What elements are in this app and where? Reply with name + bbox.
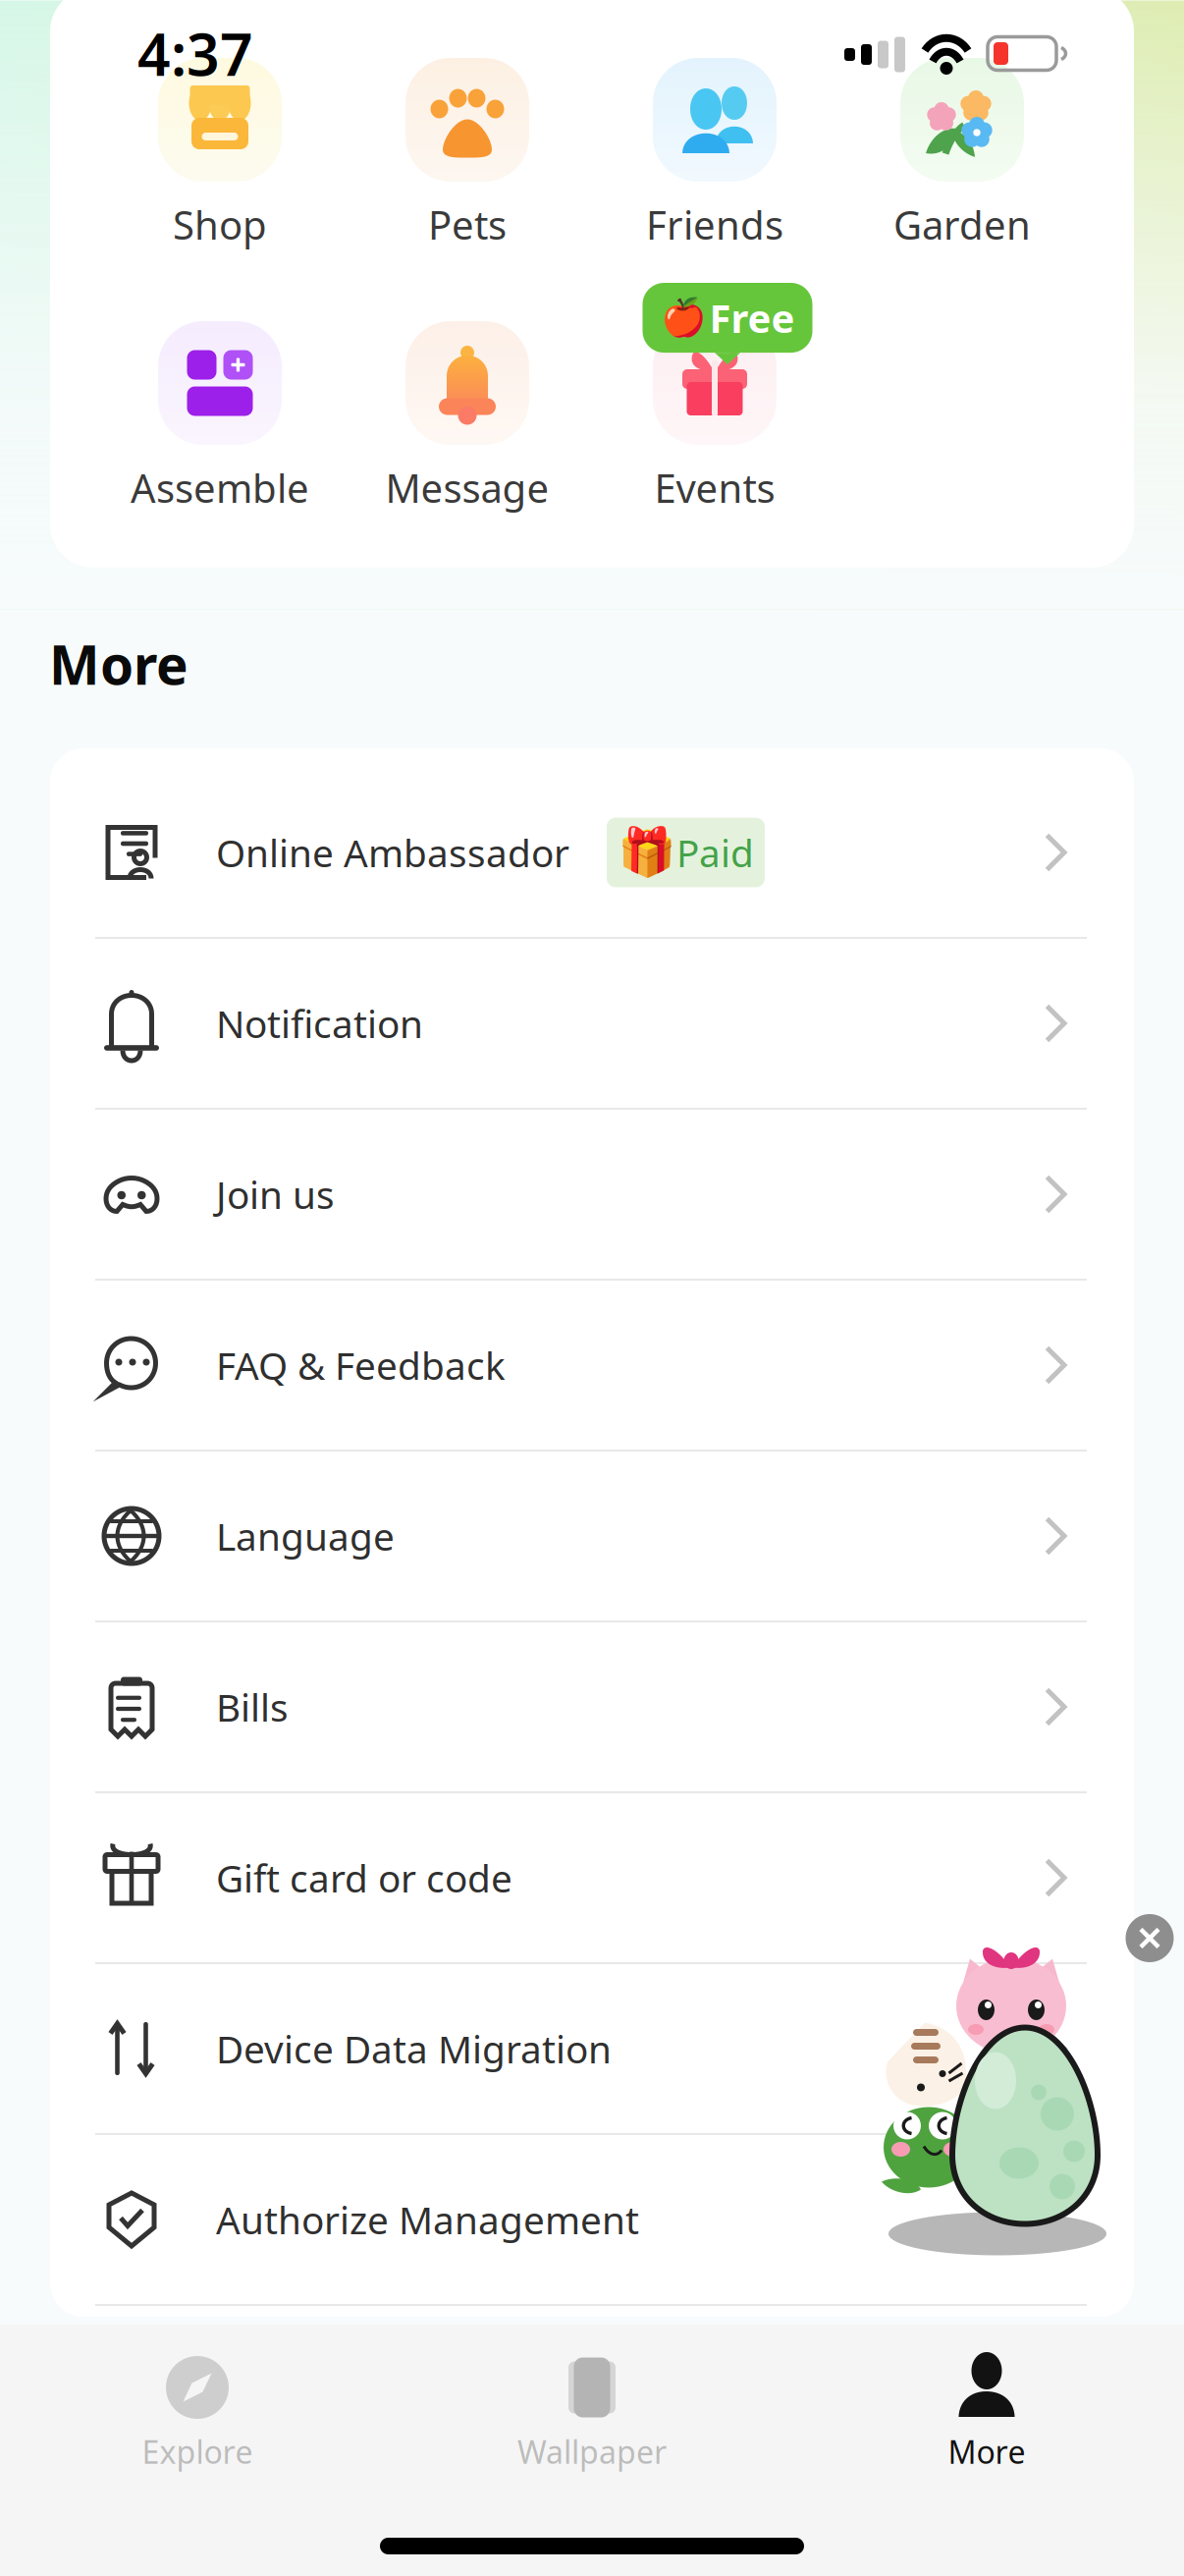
button[interactable]: Join us [50,1110,1134,1281]
staticText: Join us [216,1169,335,1219]
button[interactable]: Message [344,321,591,522]
staticText: 🎁 [618,826,676,879]
button[interactable]: Shop [96,58,344,259]
button[interactable]: Bills [50,1622,1134,1793]
staticText: Explore [142,2431,253,2472]
staticText: Garden [893,198,1031,251]
button[interactable]: More [789,2348,1184,2472]
button[interactable]: Notification [50,939,1134,1110]
button[interactable]: Pets [344,58,591,259]
staticText: More [948,2431,1025,2472]
staticText: Wallpaper [517,2431,667,2472]
staticText: Paid [676,827,754,878]
staticText: FAQ & Feedback [216,1340,506,1390]
staticText: Gift card or code [216,1853,512,1903]
staticText: More [49,628,188,700]
button[interactable]: Close [1129,1881,1184,1936]
button[interactable]: Friends [591,58,838,259]
staticText: Message [385,462,549,514]
staticText: Assemble [131,462,309,514]
staticText: Language [216,1511,395,1561]
button[interactable]: Garden [838,58,1086,259]
staticText: Bills [216,1682,289,1732]
staticText: Events [654,462,775,514]
button[interactable]: Online Ambassador [50,748,1134,939]
staticText: Free [709,292,795,344]
button[interactable]: Authorize Management [50,2135,1134,2306]
button[interactable]: Gift card or code [50,1793,1134,1964]
staticText: Online Ambassador [216,827,569,878]
button[interactable]: Explore [0,2348,395,2472]
staticText: Device Data Migration [216,2023,612,2074]
staticText: Notification [216,998,423,1048]
staticText: Friends [646,198,783,251]
button[interactable]: FAQ & Feedback [50,1281,1134,1452]
button[interactable]: Wallpaper [395,2348,789,2472]
staticText: 4:37 [137,15,253,92]
staticText: 🍎 [660,297,705,339]
button[interactable]: Assemble [96,321,344,522]
staticText: Shop [173,198,267,251]
staticText: Authorize Management [216,2194,639,2245]
button[interactable]: Language [50,1452,1134,1622]
button[interactable]: Device Data Migration [50,1964,1134,2135]
button[interactable]: Events [591,321,838,522]
staticText: Pets [428,198,507,251]
